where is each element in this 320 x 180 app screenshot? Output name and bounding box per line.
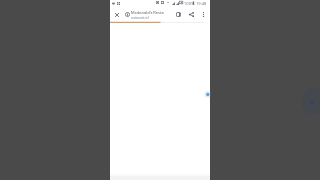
button[interactable]: Site information <box>123 10 132 19</box>
button[interactable]: More options <box>199 10 208 19</box>
staticText: Mcdonald's Restaurant (bagu… <box>131 10 164 15</box>
button[interactable]: Share <box>187 10 196 19</box>
staticText: 19:48 <box>196 1 207 7</box>
button[interactable]: Close <box>112 10 121 19</box>
button[interactable]: Open in browser <box>174 10 183 19</box>
staticText: 100% <box>184 1 195 7</box>
staticText: restaurant.inf <box>131 16 149 20</box>
